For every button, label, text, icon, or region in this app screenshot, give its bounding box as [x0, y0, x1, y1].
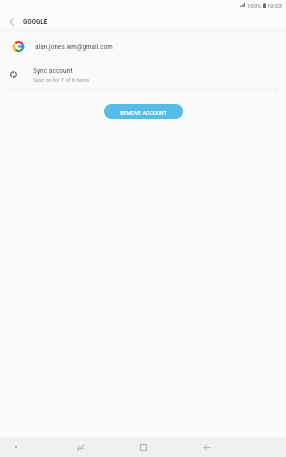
- staticText: alan.jones.wm@gmail.com: [35, 42, 113, 51]
- staticText: 10:03: [267, 2, 282, 9]
- button[interactable]: Home: [133, 437, 153, 457]
- staticText: GOOGLE: [23, 17, 48, 26]
- button[interactable]: REMOVE ACCOUNT: [104, 104, 183, 119]
- button[interactable]: Sync account: [0, 60, 286, 88]
- button[interactable]: Back: [197, 437, 217, 457]
- staticText: Sync on for 7 of 8 items: [33, 76, 90, 83]
- staticText: 100%: [247, 2, 262, 9]
- button[interactable]: alan.jones.wm@gmail.com: [0, 33, 286, 60]
- button[interactable]: Recent apps: [70, 437, 90, 457]
- button[interactable]: Menu: [6, 437, 26, 457]
- button[interactable]: Navigate up: [3, 13, 20, 30]
- staticText: Sync account: [33, 66, 73, 75]
- staticText: REMOVE ACCOUNT: [120, 109, 167, 116]
